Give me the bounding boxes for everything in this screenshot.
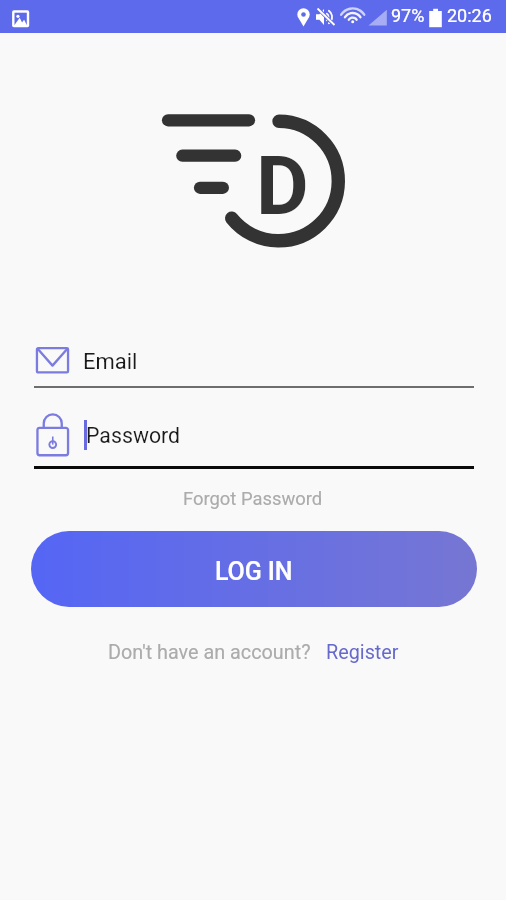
staticText: D — [256, 139, 309, 234]
staticText: Email — [83, 349, 138, 375]
staticText: Password — [86, 423, 181, 448]
button[interactable]: Register — [326, 641, 399, 664]
staticText: Don't have an account? — [108, 641, 311, 664]
staticText: Register — [326, 641, 399, 664]
button[interactable]: LOG IN — [31, 531, 477, 607]
button[interactable]: Password — [34, 411, 474, 470]
button[interactable]: Email — [34, 340, 474, 388]
staticText: 20:26 — [447, 5, 492, 26]
staticText: Forgot Password — [183, 488, 323, 510]
staticText: LOG IN — [215, 557, 293, 586]
staticText: 97% — [391, 5, 425, 26]
button[interactable]: Forgot Password — [175, 486, 331, 512]
